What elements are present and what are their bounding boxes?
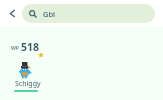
staticText: Schiggy: [15, 79, 41, 89]
staticText: Gbl: [43, 9, 56, 19]
staticText: 518: [21, 40, 40, 54]
staticText: WP: [11, 45, 19, 52]
button[interactable]: Gbl: [22, 4, 155, 23]
button[interactable]: Back: [1, 2, 23, 24]
